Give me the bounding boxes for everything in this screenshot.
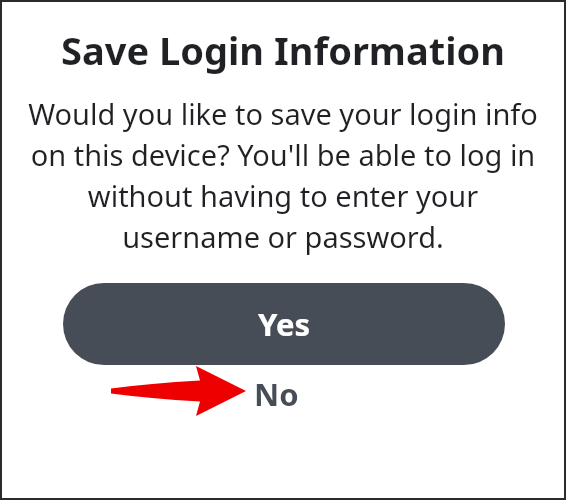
other: Pointer arrow [0, 365, 566, 439]
staticText: No [254, 373, 299, 415]
button[interactable]: Yes [63, 283, 505, 365]
staticText: Would you like to save your login info o… [26, 94, 540, 257]
button[interactable]: No [254, 373, 299, 415]
staticText: Save Login Information [0, 24, 566, 76]
staticText: Yes [258, 303, 310, 345]
